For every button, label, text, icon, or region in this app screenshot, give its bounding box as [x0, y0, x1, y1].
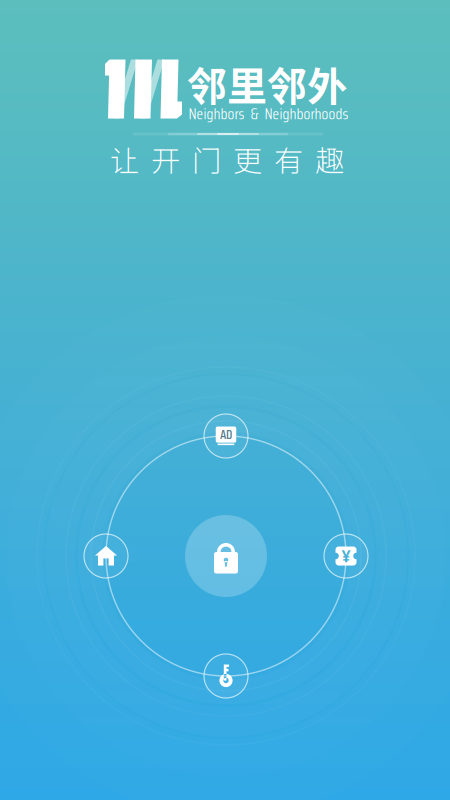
- button[interactable]: Coupons: [321, 531, 371, 581]
- button[interactable]: Keys: [201, 651, 251, 701]
- button[interactable]: Unlock door: [185, 515, 267, 597]
- staticText: Neighbors & Neighborhoods: [188, 102, 348, 126]
- staticText: 让 开 门 更 有 趣: [110, 138, 344, 180]
- button[interactable]: Home: [81, 531, 131, 581]
- staticText: 邻里邻外: [187, 54, 347, 112]
- staticText: AD: [220, 424, 232, 444]
- staticText: ¥: [341, 545, 350, 567]
- button[interactable]: Advertising: [201, 411, 251, 461]
